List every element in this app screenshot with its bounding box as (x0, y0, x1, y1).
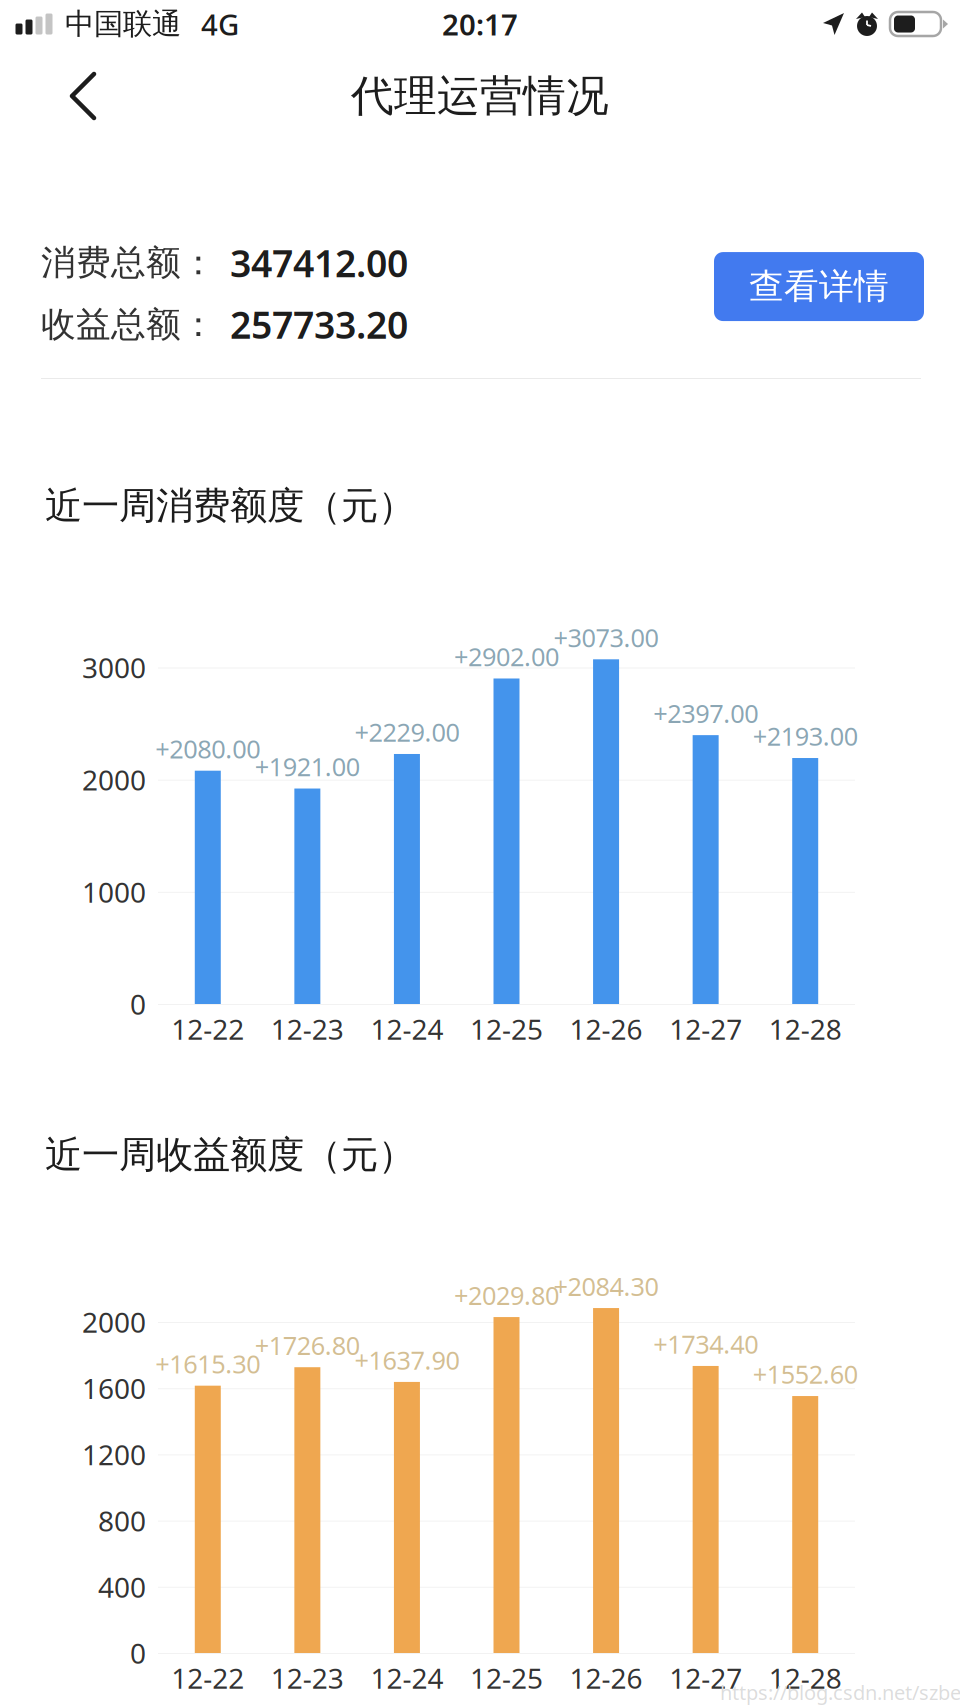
staticText: 消费总额： (41, 241, 216, 284)
staticText: 查看详情 (749, 265, 889, 308)
staticText: 1000 (82, 873, 146, 910)
staticText: 12-22 (171, 1659, 244, 1697)
staticText: +1637.90 (354, 1343, 459, 1377)
staticText: +1921.00 (255, 750, 360, 783)
staticText: 1200 (82, 1436, 146, 1473)
staticText: +2229.00 (354, 715, 459, 749)
staticText: 12-24 (370, 1010, 443, 1048)
staticText: 12-22 (171, 1010, 244, 1048)
button[interactable]: 查看详情 (714, 259, 924, 328)
staticText: 收益总额： (41, 303, 216, 346)
staticText: +2397.00 (653, 696, 758, 730)
staticText: 12-25 (470, 1010, 543, 1048)
staticText: 近一周消费额度（元） (45, 483, 415, 529)
staticText: +1615.30 (155, 1347, 260, 1380)
staticText: +2193.00 (753, 719, 858, 753)
staticText: 12-26 (570, 1010, 643, 1048)
staticText: 12-26 (570, 1659, 643, 1697)
staticText: 3000 (82, 649, 146, 686)
staticText: 代理运营情况 (351, 70, 609, 122)
staticText: +1552.60 (753, 1357, 858, 1391)
staticText: 12-23 (271, 1659, 344, 1697)
button[interactable]: Back (0, 50, 135, 142)
staticText: +2902.00 (454, 640, 559, 673)
staticText: 1600 (82, 1370, 146, 1407)
staticText: +3073.00 (554, 620, 659, 654)
staticText: 12-27 (669, 1010, 742, 1048)
staticText: https://blog.csdn.net/szbeidian (720, 1679, 960, 1706)
staticText: 近一周收益额度（元） (45, 1132, 415, 1178)
staticText: +1734.40 (653, 1327, 758, 1361)
staticText: +2080.00 (155, 732, 260, 765)
staticText: 12-28 (769, 1659, 842, 1697)
staticText: +2084.30 (554, 1269, 659, 1303)
staticText: 12-27 (669, 1659, 742, 1697)
staticText: 12-24 (370, 1659, 443, 1697)
staticText: 347412.00 (230, 238, 408, 288)
staticText: 800 (98, 1502, 146, 1539)
staticText: 2000 (82, 761, 146, 798)
staticText: 12-25 (470, 1659, 543, 1697)
staticText: 2000 (82, 1303, 146, 1341)
staticText: +1726.80 (255, 1328, 360, 1362)
staticText: 12-23 (271, 1010, 344, 1048)
staticText: 400 (98, 1568, 146, 1605)
staticText: 0 (130, 985, 146, 1023)
staticText: 0 (130, 1634, 146, 1672)
staticText: 257733.20 (230, 300, 408, 349)
staticText: 12-28 (769, 1010, 842, 1048)
staticText: 中国联通 (65, 6, 181, 42)
staticText: 4G (201, 4, 239, 43)
staticText: 20:17 (442, 4, 518, 43)
staticText: +2029.80 (454, 1278, 559, 1312)
